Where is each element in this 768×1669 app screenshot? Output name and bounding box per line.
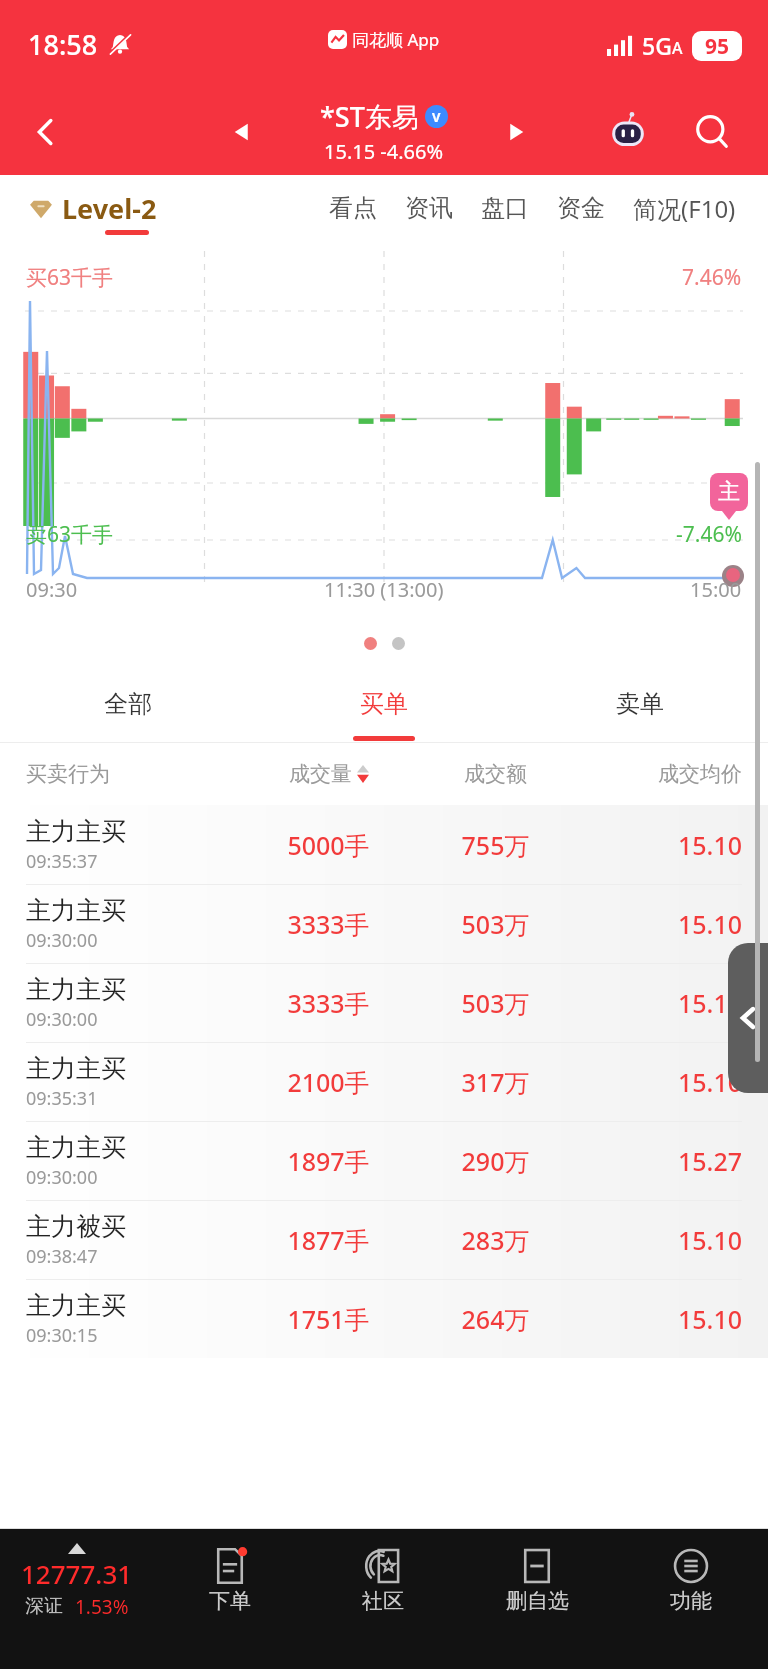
staticText: 功能 (670, 1588, 712, 1614)
staticText: 卖63千手 (26, 520, 114, 549)
staticText: 264万 (416, 1302, 575, 1336)
button[interactable] (364, 637, 377, 650)
staticText: V (432, 108, 441, 126)
button[interactable]: 买单 (256, 665, 512, 743)
staticText: 11:30 (13:00) (324, 576, 444, 603)
button[interactable]: 功能 (614, 1529, 768, 1669)
staticText: -7.46% (676, 520, 742, 549)
staticText: 主力主买 (26, 1290, 126, 1321)
staticText: Level-2 (62, 190, 157, 227)
staticText: 资金 (557, 193, 605, 223)
staticText: 看点 (329, 193, 377, 223)
button[interactable]: 社区 (306, 1529, 460, 1669)
staticText: 主力主买 (26, 1053, 126, 1084)
staticText: 15.10 (575, 1065, 742, 1099)
staticText: 09:30:00 (26, 928, 98, 953)
button[interactable]: 12777.31 (0, 1529, 153, 1669)
staticText: 盘口 (481, 193, 529, 223)
button[interactable]: 主力被买 (0, 1200, 768, 1279)
staticText: 317万 (416, 1065, 575, 1099)
button[interactable]: 全部 (0, 665, 256, 743)
button[interactable]: 盘口 (467, 193, 543, 223)
button[interactable]: Open side panel (728, 943, 768, 1093)
staticText: 成交量 (289, 761, 352, 787)
staticText: 全部 (104, 689, 152, 719)
button[interactable]: Back (18, 104, 74, 160)
staticText: 社区 (362, 1588, 404, 1614)
staticText: 09:30:15 (26, 1323, 98, 1348)
button[interactable]: 资金 (543, 193, 619, 223)
staticText: 3333手 (241, 986, 416, 1020)
staticText: 5G (642, 30, 672, 61)
staticText: 3333手 (241, 907, 416, 941)
button[interactable]: Level-2 (28, 190, 157, 227)
staticText: 主 (718, 478, 740, 506)
button[interactable] (392, 637, 405, 650)
staticText: 同花顺 App (352, 28, 440, 51)
staticText: 1751手 (241, 1302, 416, 1336)
staticText: 09:30:00 (26, 1165, 98, 1190)
staticText: 成交均价 (575, 761, 742, 787)
staticText: A (672, 37, 683, 59)
staticText: 503万 (416, 907, 575, 941)
staticText: 283万 (416, 1223, 575, 1257)
button[interactable]: 主力主买 (0, 884, 768, 963)
staticText: 09:35:31 (26, 1086, 98, 1111)
button[interactable]: 主力主买 (0, 1121, 768, 1200)
staticText: 5000手 (241, 828, 416, 862)
staticText: 09:35:37 (26, 849, 98, 874)
staticText: 资讯 (405, 193, 453, 223)
staticText: 主力主买 (26, 974, 126, 1005)
staticText: 卖单 (616, 689, 664, 719)
staticText: 主力主买 (26, 816, 126, 847)
staticText: 15.10 (575, 1302, 742, 1336)
staticText: 09:30:00 (26, 1007, 98, 1032)
button[interactable]: 主力主买 (0, 1042, 768, 1121)
staticText: 买63千手 (26, 263, 114, 292)
button[interactable]: 资讯 (391, 193, 467, 223)
button[interactable]: Previous stock (212, 102, 272, 162)
staticText: 15.10 (575, 828, 742, 862)
button[interactable]: 删自选 (460, 1529, 614, 1669)
button[interactable]: 卖单 (512, 665, 768, 743)
staticText: 15.27 (575, 1144, 742, 1178)
staticText: 简况(F10) (633, 192, 736, 225)
button[interactable]: 下单 (153, 1529, 306, 1669)
staticText: 755万 (416, 828, 575, 862)
staticText: 12777.31 (21, 1556, 133, 1591)
staticText: 买卖行为 (26, 761, 241, 787)
staticText: 15.10 (575, 1223, 742, 1257)
button[interactable]: 成交量 (241, 761, 416, 787)
button[interactable]: 主力主买 (0, 1279, 768, 1358)
staticText: 15.15 -4.66% (324, 138, 444, 165)
staticText: 09:38:47 (26, 1244, 98, 1269)
staticText: 主力被买 (26, 1211, 126, 1242)
staticText: 主力主买 (26, 1132, 126, 1163)
staticText: 买单 (360, 689, 408, 719)
button[interactable]: Search (684, 104, 740, 160)
button[interactable]: 主力主买 (0, 963, 768, 1042)
staticText: 深证 (25, 1594, 63, 1618)
staticText: 09:30 (26, 576, 78, 603)
staticText: 7.46% (682, 263, 742, 292)
staticText: 2100手 (241, 1065, 416, 1099)
button[interactable]: 主力主买 (0, 805, 768, 884)
staticText: *ST东易 (320, 98, 419, 135)
staticText: 1897手 (241, 1144, 416, 1178)
staticText: 主力主买 (26, 895, 126, 926)
staticText: 15.10 (575, 907, 742, 941)
staticText: 1877手 (241, 1223, 416, 1257)
button[interactable]: 简况(F10) (619, 192, 750, 225)
button[interactable]: 看点 (315, 193, 391, 223)
staticText: 15.10 (575, 986, 742, 1020)
button[interactable]: AI assistant (600, 104, 656, 160)
staticText: 95 (705, 32, 730, 61)
staticText: 下单 (209, 1588, 251, 1614)
staticText: 18:58 (28, 26, 98, 63)
staticText: 503万 (416, 986, 575, 1020)
staticText: 1.53% (75, 1594, 129, 1620)
staticText: 成交额 (416, 761, 575, 787)
button[interactable]: Next stock (486, 102, 546, 162)
staticText: 290万 (416, 1144, 575, 1178)
staticText: 删自选 (506, 1588, 569, 1614)
